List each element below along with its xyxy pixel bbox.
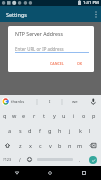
button[interactable]: l — [85, 123, 95, 138]
staticText: x — [29, 142, 32, 149]
staticText: we — [72, 99, 78, 105]
button[interactable]: e — [19, 108, 29, 123]
staticText: OK — [77, 61, 83, 66]
staticText: t — [43, 112, 45, 119]
button[interactable]: / — [15, 153, 24, 166]
staticText: o — [82, 112, 86, 119]
button[interactable]: ?123 — [0, 153, 15, 166]
button[interactable]: f — [35, 123, 45, 138]
button[interactable]: c — [35, 138, 45, 153]
button[interactable]: q — [0, 108, 9, 123]
button[interactable]: g — [45, 123, 55, 138]
button[interactable]: Enter — [84, 153, 101, 166]
staticText: k — [79, 127, 82, 134]
button[interactable]: OK — [75, 59, 85, 68]
staticText: s — [19, 127, 22, 134]
staticText: b — [58, 142, 62, 149]
button[interactable]: a — [5, 123, 15, 138]
staticText: n — [68, 142, 72, 149]
button[interactable]: Recent apps — [67, 166, 101, 180]
button[interactable]: s — [15, 123, 25, 138]
staticText: m — [77, 142, 83, 149]
button[interactable]: thanks — [11, 95, 37, 108]
button[interactable]: b — [55, 138, 65, 153]
button[interactable]: d — [25, 123, 35, 138]
staticText: r — [33, 112, 36, 119]
button[interactable]: Back — [0, 166, 33, 180]
button[interactable]: n — [65, 138, 75, 153]
staticText: g — [48, 127, 52, 134]
staticText: q — [3, 112, 7, 119]
button[interactable]: Home — [33, 166, 67, 180]
staticText: Enter URL or IP address — [15, 46, 64, 52]
staticText: f — [39, 127, 41, 134]
staticText: w — [12, 112, 17, 119]
button[interactable]: v — [45, 138, 55, 153]
staticText: Settings — [6, 11, 27, 18]
staticText: . — [79, 157, 81, 163]
button[interactable]: y — [49, 108, 59, 123]
button[interactable]: r — [29, 108, 39, 123]
button[interactable]: j — [65, 123, 75, 138]
staticText: e — [22, 112, 26, 119]
button[interactable]: x — [25, 138, 35, 153]
staticText: i — [73, 112, 75, 119]
button[interactable]: m — [75, 138, 85, 153]
button[interactable]: CANCEL — [48, 59, 66, 68]
button[interactable]: Backspace — [85, 138, 101, 153]
staticText: I — [49, 99, 51, 105]
button[interactable]: I — [37, 95, 62, 108]
button[interactable]: o — [79, 108, 89, 123]
staticText: thanks — [11, 99, 25, 105]
staticText: d — [28, 127, 32, 134]
staticText: NTP Server Address — [15, 30, 63, 37]
button[interactable]: p — [89, 108, 99, 123]
button[interactable]: Emoji — [24, 153, 35, 166]
staticText: CANCEL — [50, 61, 64, 66]
staticText: z — [19, 142, 22, 149]
button[interactable]: u — [59, 108, 69, 123]
staticText: y — [53, 112, 56, 119]
staticText: j — [69, 127, 71, 134]
button[interactable]: w — [9, 108, 19, 123]
button[interactable]: k — [75, 123, 85, 138]
button[interactable]: z — [15, 138, 25, 153]
staticText: l — [89, 127, 91, 134]
button[interactable]: i — [69, 108, 79, 123]
staticText: u — [62, 112, 66, 119]
staticText: v — [49, 142, 52, 149]
staticText: / — [19, 157, 21, 163]
staticText: 1:31 PM — [83, 0, 99, 6]
button[interactable]: t — [39, 108, 49, 123]
staticText: a — [8, 127, 12, 134]
button[interactable]: More options — [90, 6, 101, 22]
staticText: c — [39, 142, 42, 149]
button[interactable]: we — [62, 95, 87, 108]
button[interactable]: . — [75, 153, 84, 166]
staticText: h — [58, 127, 62, 134]
button[interactable]: h — [55, 123, 65, 138]
staticText: ?123 — [3, 157, 12, 162]
button[interactable]: Shift — [0, 138, 15, 153]
staticText: p — [92, 112, 96, 119]
